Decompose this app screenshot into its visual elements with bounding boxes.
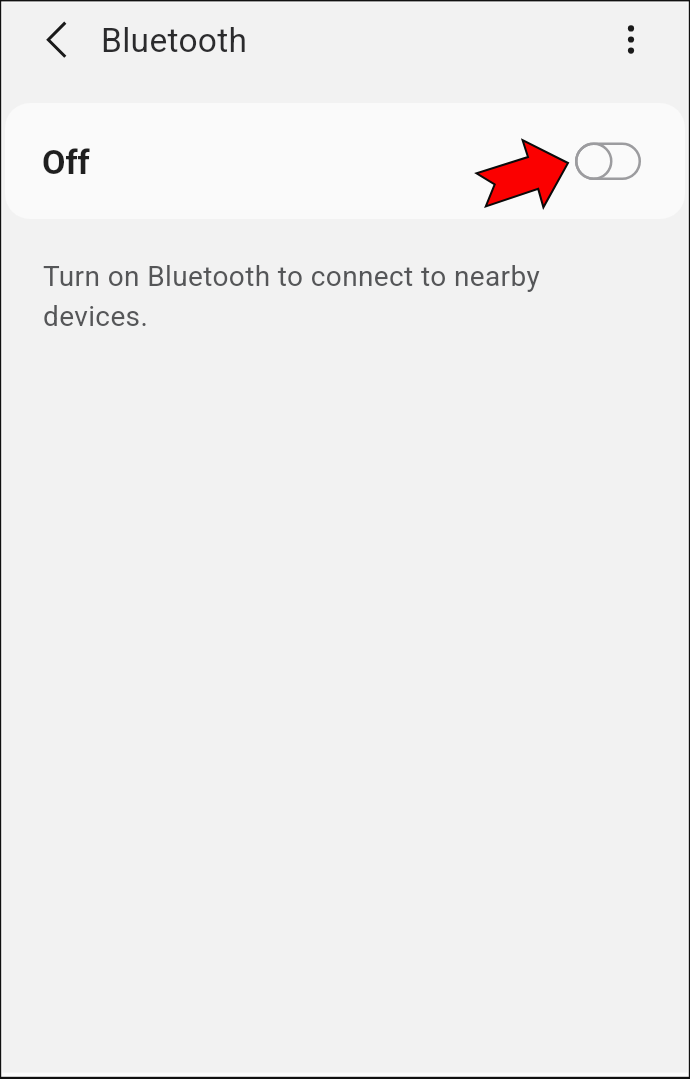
button[interactable]: Navigate up bbox=[25, 14, 77, 66]
button[interactable]: More options bbox=[607, 15, 655, 63]
button[interactable]: Bluetooth toggle, off bbox=[567, 132, 649, 186]
staticText: Off bbox=[42, 142, 90, 182]
button[interactable]: Off bbox=[5, 103, 685, 219]
staticText: Turn on Bluetooth to connect to nearby d… bbox=[43, 260, 558, 333]
staticText: Bluetooth bbox=[101, 21, 248, 60]
